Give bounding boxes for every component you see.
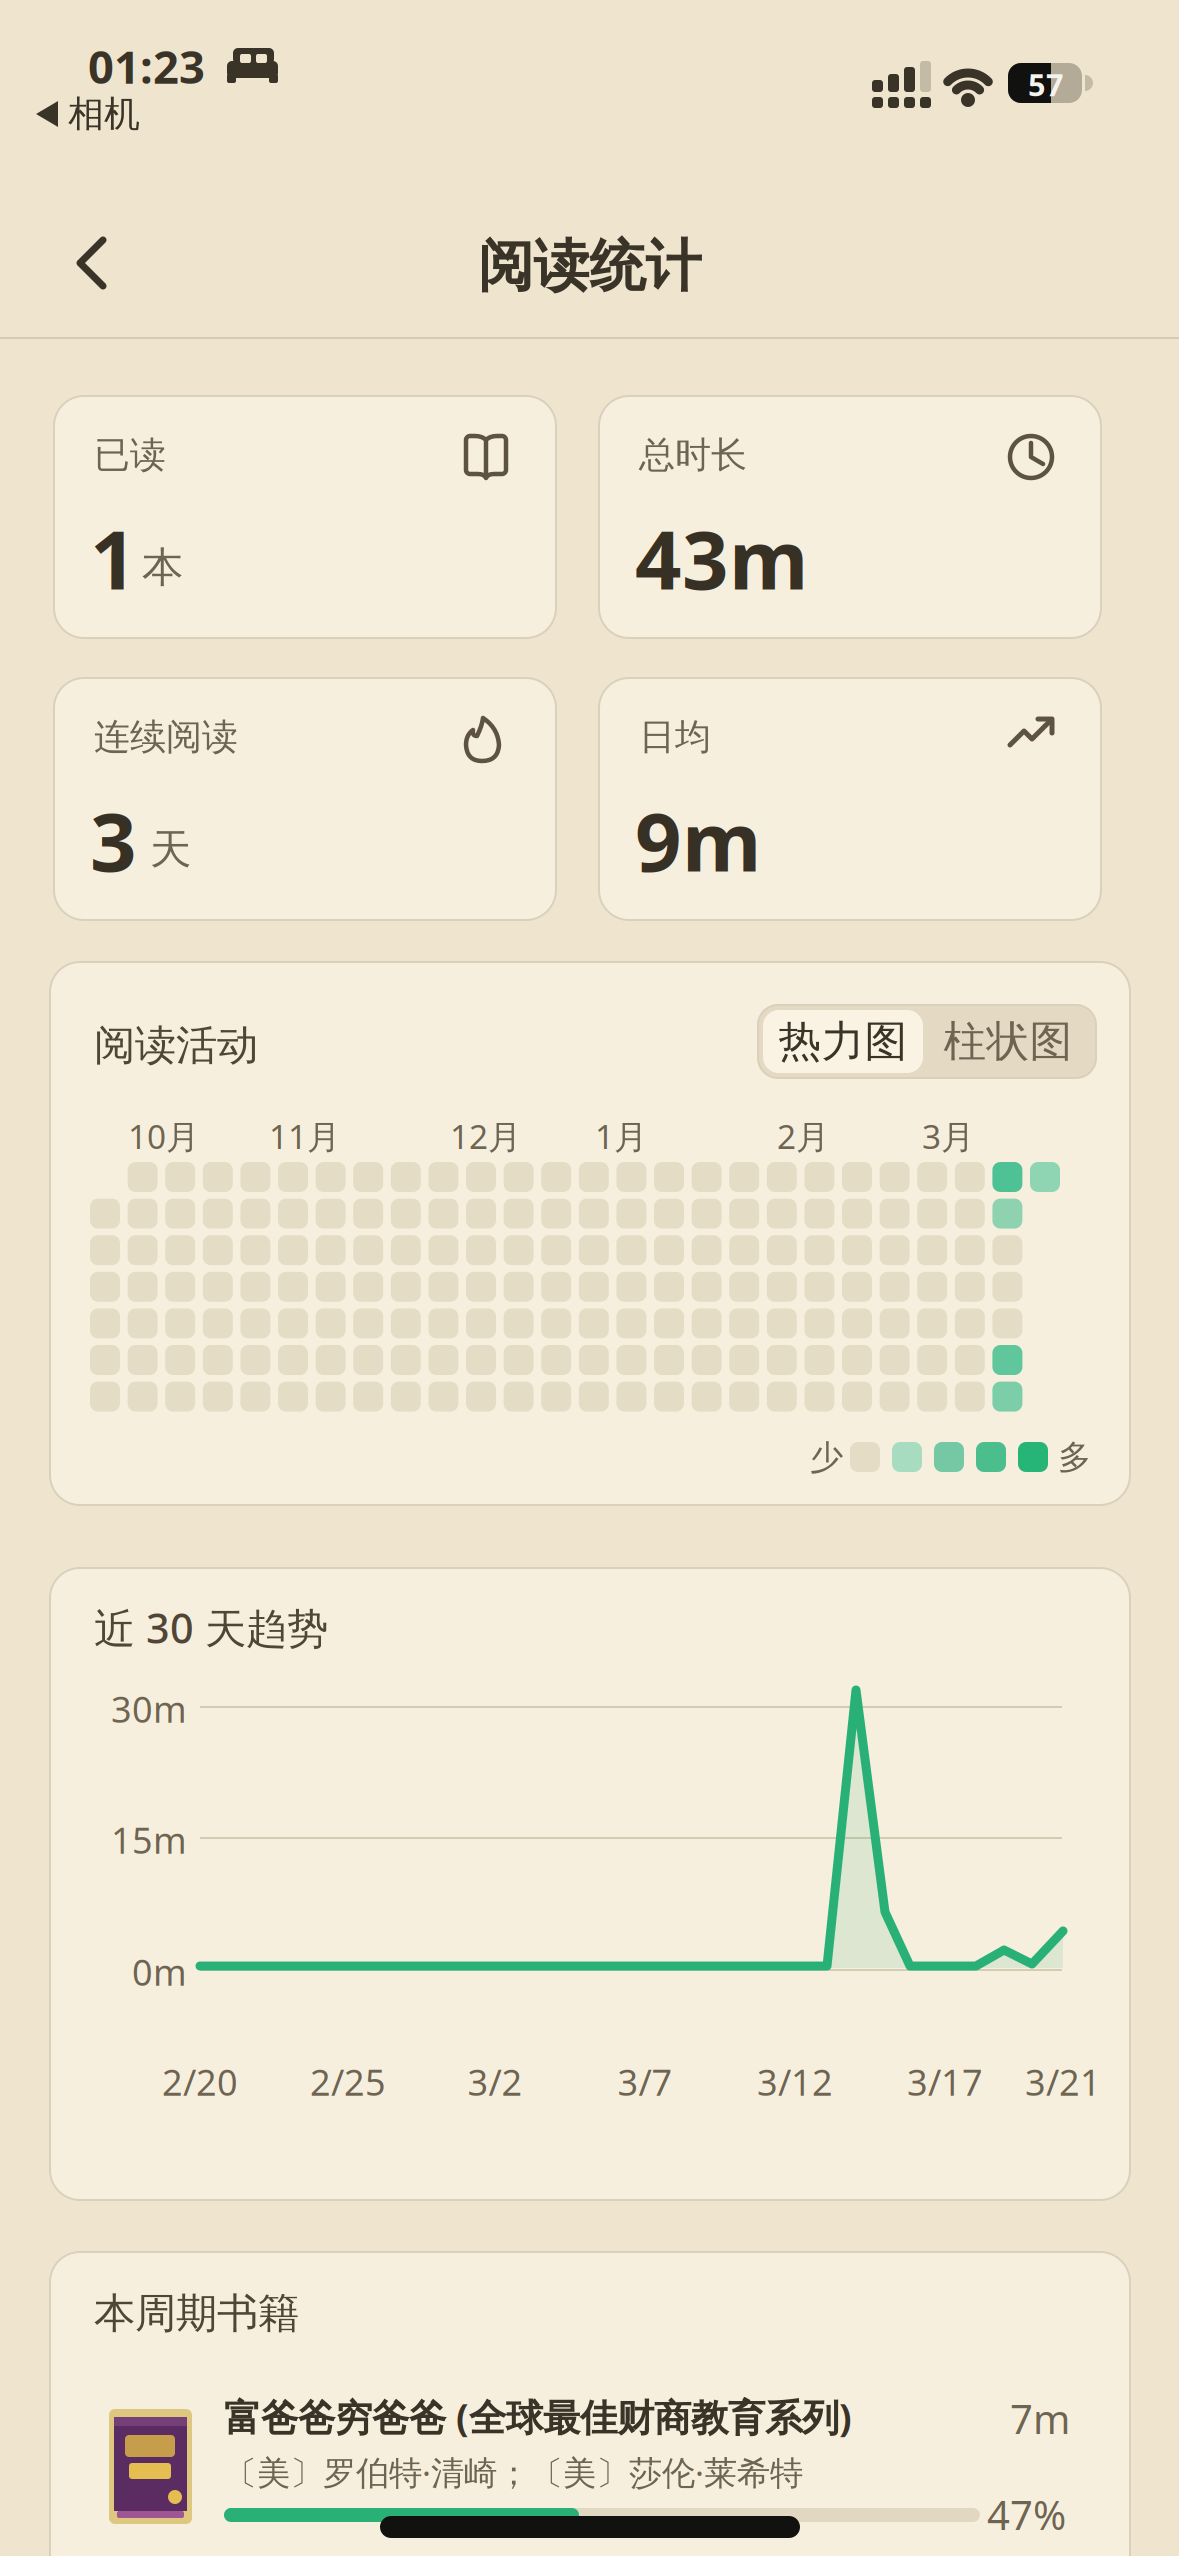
staticText: 47% — [987, 2488, 1066, 2541]
staticText: 阅读活动 — [94, 1020, 258, 1071]
staticText: 总时长 — [639, 433, 747, 477]
staticText: 12月 — [450, 1114, 521, 1158]
button[interactable]: 富爸爸穷爸爸 (全球最佳财商教育系列) — [100, 2390, 1080, 2535]
staticText: 15m — [111, 1816, 187, 1864]
button[interactable]: 返回 — [70, 235, 126, 291]
staticText: 7m — [1010, 2392, 1070, 2445]
staticText: 0m — [132, 1948, 187, 1996]
staticText: 相机 — [68, 92, 140, 136]
staticText: 已读 — [94, 433, 166, 477]
staticText: 〔美〕罗伯特·清崎；〔美〕莎伦·莱希特 — [224, 2450, 803, 2494]
button[interactable]: 热力图 — [763, 1010, 923, 1073]
staticText: 阅读统计 — [477, 232, 701, 301]
staticText: 3/12 — [757, 2058, 833, 2106]
staticText: 43m — [635, 504, 808, 612]
staticText: 2月 — [777, 1114, 829, 1158]
staticText: 日均 — [639, 715, 711, 759]
staticText: 少 — [810, 1437, 843, 1478]
staticText: 3月 — [922, 1114, 974, 1158]
staticText: 热力图 — [778, 1015, 907, 1068]
staticText: 3/7 — [617, 2058, 672, 2106]
staticText: 3/2 — [467, 2058, 522, 2106]
staticText: 10月 — [128, 1114, 199, 1158]
staticText: 本 — [142, 542, 183, 593]
staticText: 9m — [635, 786, 761, 894]
staticText: 11月 — [269, 1114, 340, 1158]
staticText: 多 — [1058, 1437, 1091, 1478]
staticText: 30m — [111, 1685, 187, 1733]
staticText: 57 — [1028, 64, 1064, 105]
staticText: 富爸爸穷爸爸 (全球最佳财商教育系列) — [224, 2392, 852, 2442]
button[interactable]: 柱状图 — [928, 1010, 1088, 1073]
staticText: 3/17 — [907, 2058, 983, 2106]
staticText: 天 — [150, 824, 191, 875]
staticText: 01:23 — [88, 36, 205, 96]
staticText: 柱状图 — [943, 1015, 1072, 1068]
staticText: 1月 — [595, 1114, 647, 1158]
staticText: 3/21 — [1025, 2058, 1101, 2106]
staticText: 1 — [90, 504, 137, 612]
staticText: 3 — [90, 786, 137, 894]
staticText: 连续阅读 — [94, 715, 238, 759]
staticText: 2/25 — [310, 2058, 386, 2106]
staticText: 2/20 — [162, 2058, 238, 2106]
staticText: 本周期书籍 — [94, 2288, 299, 2339]
staticText: 近 30 天趋势 — [94, 1600, 328, 1655]
